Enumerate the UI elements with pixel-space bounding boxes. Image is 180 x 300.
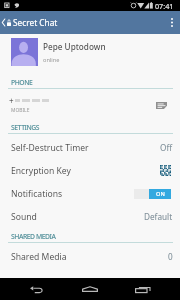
button[interactable]: Notifications xyxy=(0,182,180,205)
staticText: ON xyxy=(156,190,165,198)
staticText: Encryption Key xyxy=(11,165,71,177)
staticText: SETTINGS xyxy=(11,123,40,132)
staticText: MOBILE xyxy=(11,107,30,114)
staticText: Sound xyxy=(11,211,37,223)
button[interactable]: Sound xyxy=(0,205,180,228)
button[interactable]: Send message xyxy=(152,97,171,113)
staticText: Pepe Uptodown xyxy=(43,41,106,52)
button[interactable]: Recents xyxy=(131,282,153,296)
button[interactable]: Back xyxy=(25,282,47,296)
staticText: PHONE xyxy=(11,78,33,87)
staticText: 0 xyxy=(168,251,173,262)
button[interactable]: Notifications toggle xyxy=(134,189,171,199)
staticText: online xyxy=(43,56,60,64)
staticText: Notifications xyxy=(11,188,63,200)
button[interactable]: Encryption Key xyxy=(0,159,180,182)
staticText: Off xyxy=(160,142,173,153)
staticText: Self-Destruct Timer xyxy=(11,142,89,154)
staticText: SHARED MEDIA xyxy=(11,232,56,241)
button[interactable]: Pepe Uptodown xyxy=(0,34,180,70)
staticText: Secret Chat xyxy=(13,17,58,28)
staticText: Default xyxy=(144,211,173,222)
staticText: Shared Media xyxy=(11,251,67,263)
staticText: 07:41 xyxy=(155,1,174,11)
button[interactable]: Home xyxy=(79,282,101,296)
button[interactable]: + xyxy=(0,89,180,119)
button[interactable]: Shared Media xyxy=(0,243,180,270)
button[interactable]: More options xyxy=(164,11,180,34)
staticText: + xyxy=(9,95,14,106)
button[interactable]: Self-Destruct Timer xyxy=(0,136,180,159)
button[interactable]: Back xyxy=(0,11,7,34)
